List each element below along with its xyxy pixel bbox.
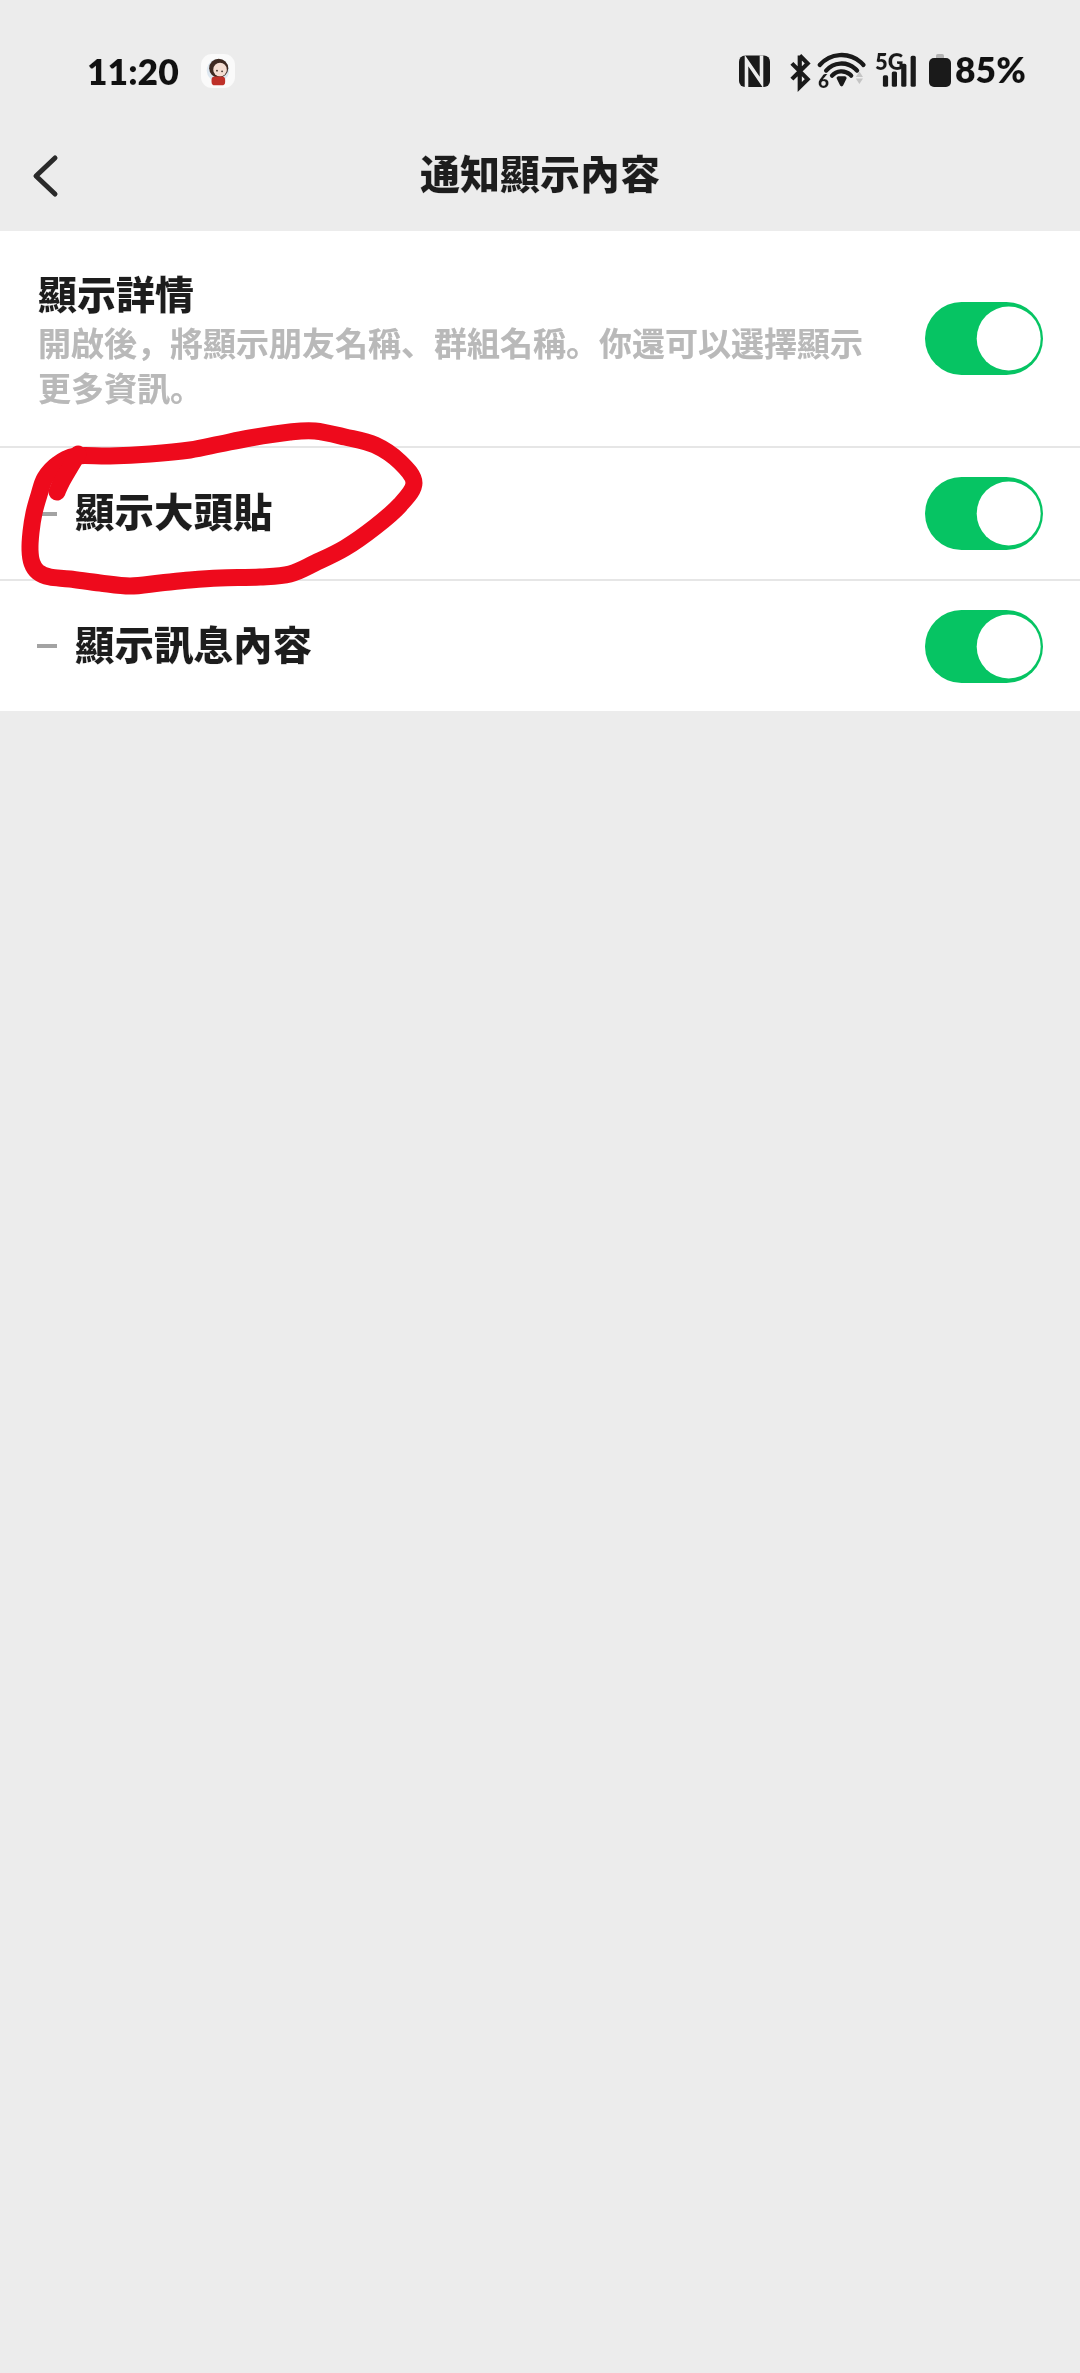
staticText: 85% (955, 48, 1026, 91)
button[interactable]: Toggle on (925, 477, 1043, 550)
staticText: 11:20 (87, 50, 179, 93)
button[interactable]: 顯示大頭貼 (0, 448, 1080, 579)
staticText: 顯示大頭貼 (75, 481, 273, 538)
staticText: 通知顯示內容 (420, 143, 660, 201)
staticText: 顯示詳情 (38, 264, 195, 320)
staticText: 6 (818, 69, 830, 92)
staticText: 開啟後，將顯示朋友名稱、群組名稱。你還可以選擇顯示更多資訊。 (38, 318, 877, 411)
button[interactable]: Toggle on (925, 610, 1043, 683)
button[interactable]: 顯示訊息內容 (0, 581, 1080, 711)
staticText: 5G (875, 48, 904, 74)
staticText: 顯示訊息內容 (75, 614, 312, 671)
button[interactable]: 顯示詳情 (0, 231, 1080, 446)
button[interactable]: Back (0, 116, 110, 226)
button[interactable]: Toggle on (925, 302, 1043, 375)
